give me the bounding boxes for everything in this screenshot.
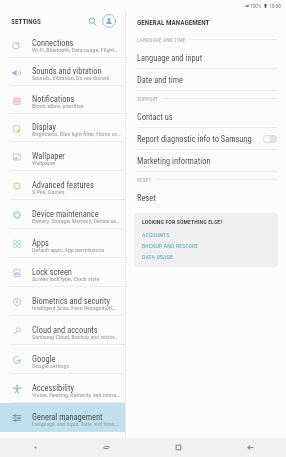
staticText: Google [32,354,56,364]
button[interactable]: Language and input [126,47,286,69]
button[interactable]: Home [142,438,214,457]
staticText: GENERAL MANAGEMENT [137,18,210,26]
staticText: LANGUAGE AND TIME [137,37,186,43]
staticText: 100% [250,3,262,9]
button[interactable]: Biometrics and security [0,287,125,316]
staticText: RESET [137,177,152,183]
staticText: Date and time [137,75,183,85]
button[interactable]: Apps [0,229,125,258]
staticText: Contact us [137,112,173,122]
staticText: Wallpaper [32,159,56,166]
button[interactable]: BACKUP AND RESTORE [142,243,199,250]
staticText: Wallpaper [32,151,65,161]
button[interactable]: Marketing information [126,150,286,172]
staticText: DATA USAGE [142,254,174,261]
staticText: Default apps, App permissions [32,246,105,253]
staticText: Intelligent Scan, Face Recognition,… [32,304,117,311]
staticText: Report diagnostic info to Samsung [137,134,252,144]
staticText: Notifications [32,94,75,104]
button[interactable]: Keyboard [0,438,71,457]
staticText: Language and input, Date and time,… [32,420,119,427]
staticText: S Pen, Games [32,188,65,195]
staticText: ACCOUNTS [142,232,170,239]
staticText: Screen lock type, Clock style [32,275,100,282]
staticText: Samsung Cloud, Backup and restor… [32,333,118,340]
button[interactable]: Wallpaper [0,142,125,171]
staticText: Marketing information [137,156,211,166]
button[interactable]: DATA USAGE [142,254,174,261]
staticText: Reset [137,193,156,203]
staticText: Sounds and vibration [32,66,102,76]
button[interactable]: ACCOUNTS [142,232,170,239]
staticText: Apps [32,238,49,248]
button[interactable]: Reset [126,187,286,209]
button[interactable]: Cloud and accounts [0,316,125,345]
staticText: Block, allow, prioritise [32,102,84,109]
button[interactable]: Connections [0,30,125,58]
button[interactable]: Recents [71,438,142,457]
staticText: SUPPORT [137,96,159,102]
button[interactable]: Sounds and vibration [0,58,125,86]
staticText: Battery, Storage, Memory, Device se… [32,217,120,224]
button[interactable]: Search [85,14,99,28]
staticText: Sounds, Vibration, Do not disturb [32,74,110,81]
button[interactable]: Device maintenance [0,200,125,229]
staticText: BACKUP AND RESTORE [142,243,199,250]
staticText: Google settings [32,362,70,369]
button[interactable]: Lock screen [0,258,125,287]
staticText: Accessibility [32,383,74,393]
staticText: 10:00 [269,3,281,9]
button[interactable]: Date and time [126,69,286,91]
staticText: Cloud and accounts [32,325,98,335]
staticText: SETTINGS [11,17,41,25]
button[interactable]: General management [0,403,125,432]
button[interactable]: Google [0,345,125,374]
staticText: Wi-Fi, Bluetooth, Data usage, Flight… [32,46,118,53]
button[interactable]: Advanced features [0,171,125,200]
staticText: Lock screen [32,267,72,277]
staticText: Connections [32,38,74,48]
button[interactable]: Accessibility [0,374,125,403]
staticText: Display [32,122,57,132]
staticText: Advanced features [32,180,94,190]
staticText: Vision, Hearing, Dexterity and intera… [32,391,120,398]
staticText: LOOKING FOR SOMETHING ELSE? [142,219,223,226]
staticText: Biometrics and security [32,296,110,306]
button[interactable]: Report diagnostic info to Samsung [126,128,286,150]
button[interactable]: Back [214,438,286,457]
staticText: Brightness, Blue light filter, Home sc… [32,130,121,137]
button[interactable]: Display [0,114,125,142]
button[interactable]: Notifications [0,86,125,114]
button[interactable]: Account [101,13,117,29]
button[interactable]: Contact us [126,106,286,128]
staticText: Language and input [137,53,203,63]
staticText: General management [32,412,103,422]
staticText: Device maintenance [32,209,99,219]
